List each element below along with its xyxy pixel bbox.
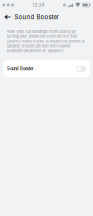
- staticText: 12:34: [32, 2, 44, 8]
- button[interactable]: Back: [1, 10, 13, 24]
- staticText: Sound Booster: [7, 66, 34, 71]
- button[interactable]: Sound Booster: [3, 60, 90, 77]
- staticText: Hear your surroundings more clearly by t…: [6, 29, 85, 53]
- staticText: Sound Booster: [14, 13, 58, 21]
